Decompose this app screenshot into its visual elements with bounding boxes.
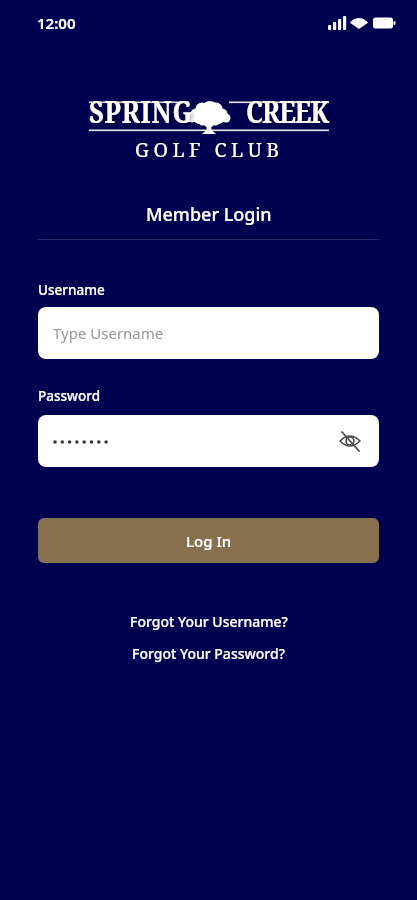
button[interactable]: Forgot Your Password?: [128, 640, 289, 667]
button[interactable]: Log In: [38, 518, 379, 563]
staticText: SPRING: [89, 91, 193, 132]
staticText: Username: [38, 281, 105, 299]
staticText: Log In: [186, 531, 232, 551]
staticText: Member Login: [146, 202, 272, 227]
button[interactable]: Type Username: [38, 307, 379, 359]
staticText: Type Username: [53, 323, 164, 343]
staticText: GOLF CLUB: [135, 136, 284, 163]
staticText: Password: [38, 387, 101, 405]
staticText: 12:00: [37, 13, 76, 33]
button[interactable]: [38, 415, 379, 467]
button[interactable]: Forgot Your Username?: [126, 608, 292, 635]
staticText: Forgot Your Password?: [132, 644, 285, 663]
staticText: CREEK: [246, 91, 329, 132]
staticText: Forgot Your Username?: [130, 612, 288, 631]
